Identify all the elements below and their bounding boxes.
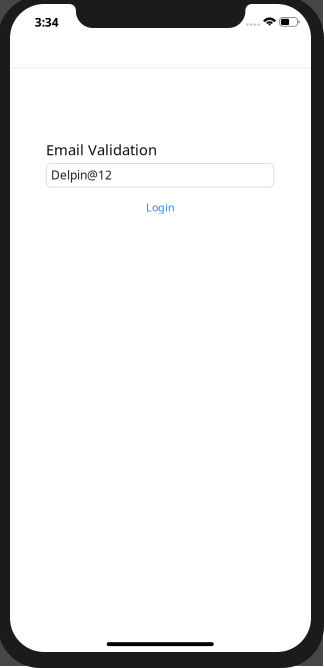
staticText: 3:34	[35, 14, 59, 30]
button[interactable]: Login	[132, 200, 188, 214]
staticText: Login	[146, 200, 175, 214]
staticText: Delpin@12	[51, 167, 112, 183]
staticText: Email Validation	[46, 140, 157, 159]
